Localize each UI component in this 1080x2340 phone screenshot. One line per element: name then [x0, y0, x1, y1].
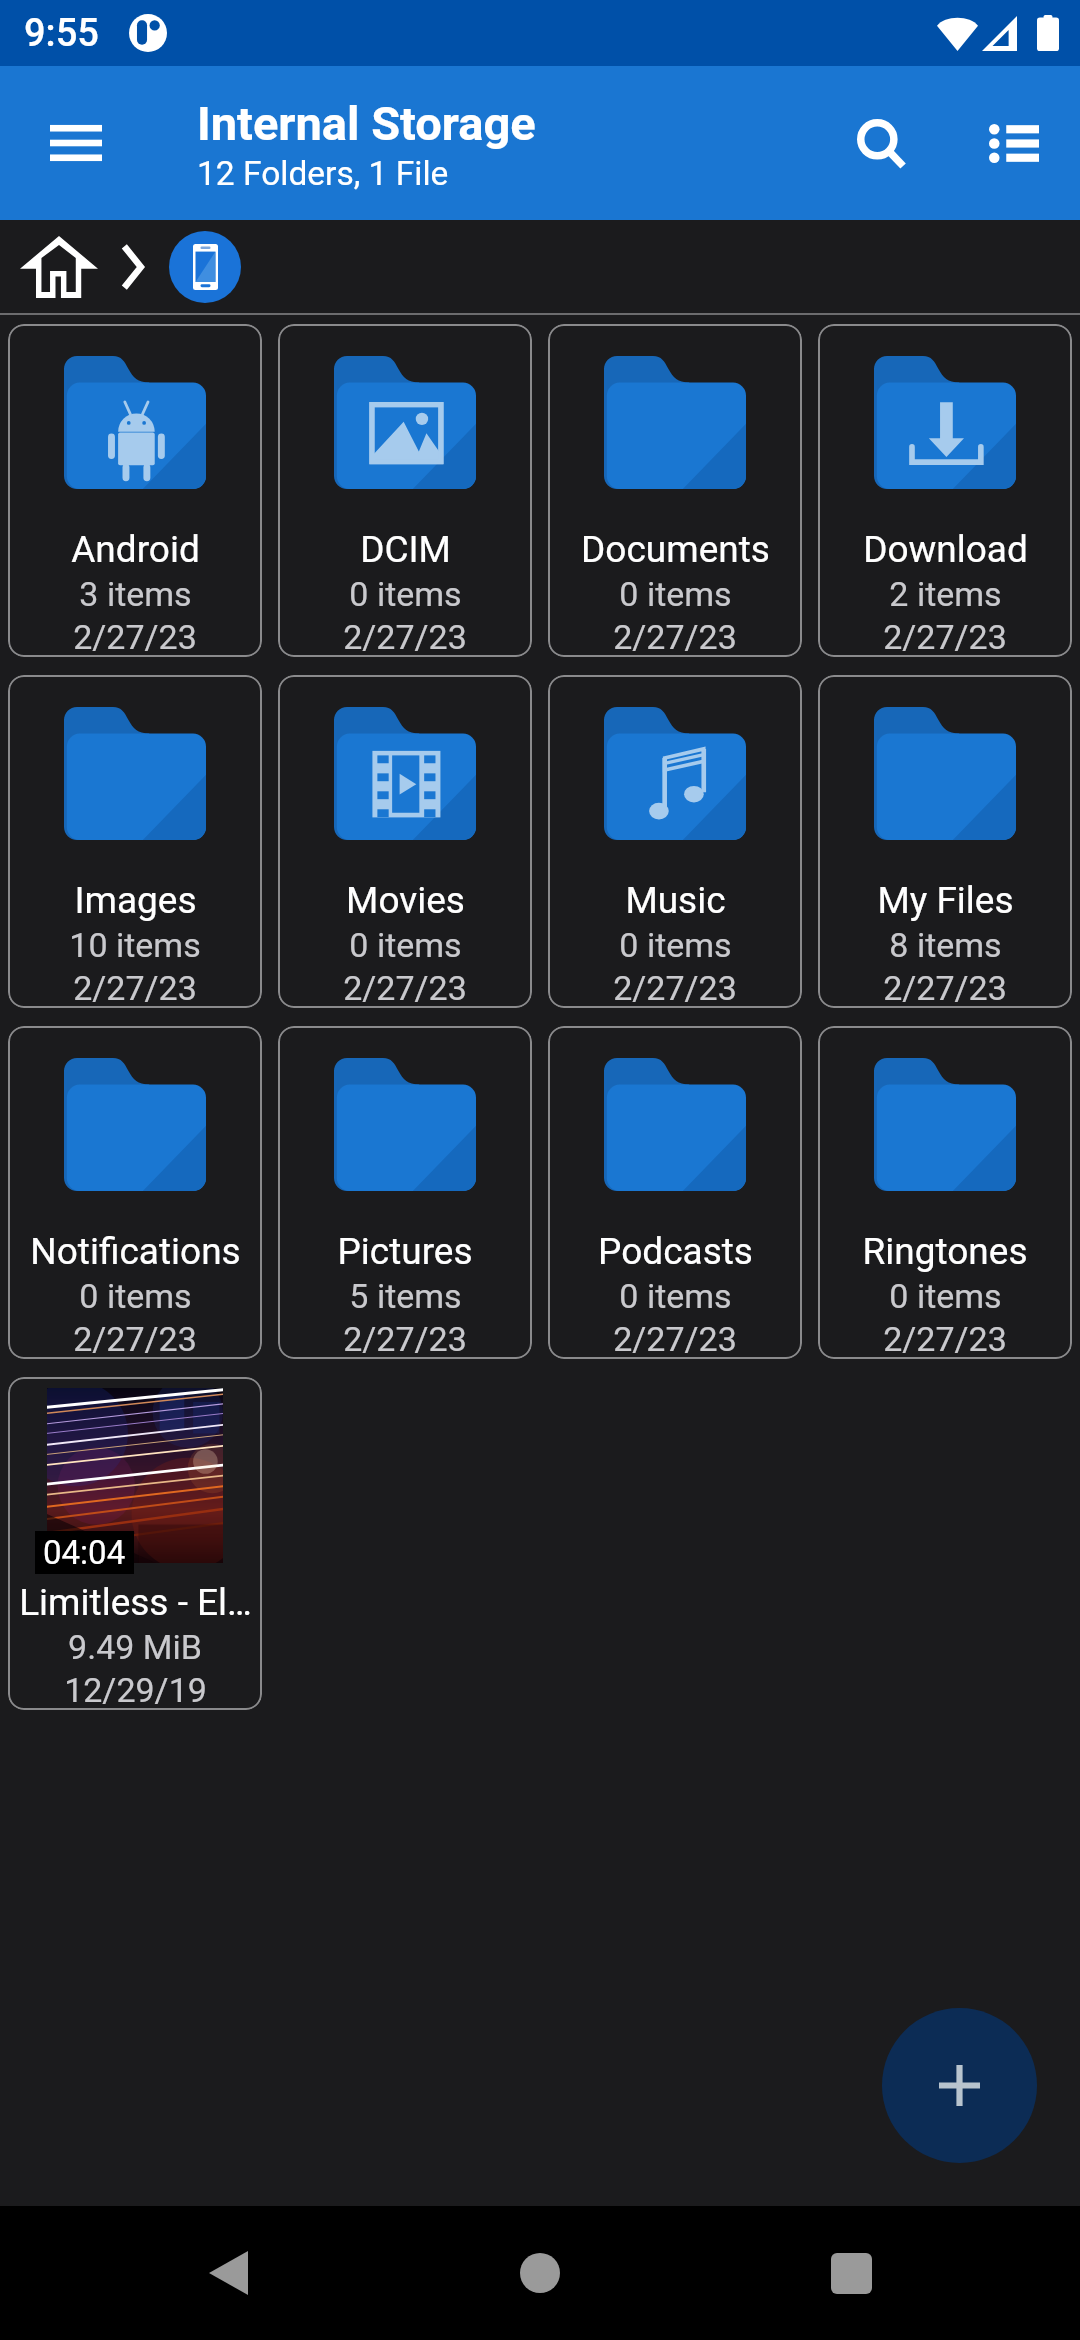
- staticText: Notifications: [30, 1230, 241, 1273]
- button[interactable]: Ringtones: [818, 1026, 1072, 1359]
- staticText: 5 items: [349, 1276, 462, 1316]
- staticText: 8 items: [889, 925, 1002, 965]
- staticText: 2/27/23: [613, 1319, 737, 1359]
- staticText: 12/29/19: [64, 1670, 207, 1710]
- button[interactable]: Change view: [965, 66, 1063, 220]
- staticText: 0 items: [889, 1276, 1002, 1316]
- button[interactable]: Documents: [548, 324, 802, 657]
- staticText: 2/27/23: [613, 968, 737, 1008]
- staticText: Images: [74, 879, 197, 922]
- staticText: 0 items: [349, 925, 462, 965]
- staticText: 0 items: [349, 574, 462, 614]
- button[interactable]: Music: [548, 675, 802, 1008]
- staticText: 9.49 MiB: [68, 1627, 202, 1667]
- staticText: 2/27/23: [73, 1319, 197, 1359]
- button[interactable]: 04:04: [8, 1377, 262, 1710]
- staticText: DCIM: [360, 528, 451, 571]
- staticText: 0 items: [619, 1276, 732, 1316]
- staticText: 0 items: [619, 925, 732, 965]
- staticText: 10 items: [69, 925, 201, 965]
- button[interactable]: Home: [10, 220, 108, 313]
- button[interactable]: Back: [148, 2206, 308, 2340]
- staticText: 0 items: [619, 574, 732, 614]
- button[interactable]: Open navigation drawer: [28, 95, 124, 191]
- staticText: My Files: [877, 879, 1014, 922]
- staticText: 2/27/23: [73, 968, 197, 1008]
- staticText: 0 items: [79, 1276, 192, 1316]
- staticText: 2 items: [889, 574, 1002, 614]
- staticText: 2/27/23: [883, 968, 1007, 1008]
- staticText: Movies: [346, 879, 465, 922]
- staticText: Documents: [581, 528, 770, 571]
- button[interactable]: Search: [832, 66, 930, 220]
- staticText: 04:04: [43, 1533, 126, 1572]
- button[interactable]: Internal Storage: [169, 231, 241, 303]
- staticText: Music: [625, 879, 726, 922]
- staticText: 2/27/23: [613, 617, 737, 657]
- button[interactable]: Home: [460, 2206, 620, 2340]
- staticText: 2/27/23: [343, 617, 467, 657]
- staticText: 2/27/23: [343, 968, 467, 1008]
- staticText: 2/27/23: [343, 1319, 467, 1359]
- staticText: Limitless - El…: [19, 1581, 252, 1624]
- staticText: Android: [71, 528, 200, 571]
- button[interactable]: Add: [882, 2008, 1037, 2163]
- staticText: Pictures: [337, 1230, 473, 1273]
- button[interactable]: Pictures: [278, 1026, 532, 1359]
- button[interactable]: Android: [8, 324, 262, 657]
- staticText: Ringtones: [862, 1230, 1028, 1273]
- button[interactable]: Images: [8, 675, 262, 1008]
- staticText: 12 Folders, 1 File: [197, 154, 449, 193]
- staticText: Internal Storage: [197, 96, 536, 151]
- button[interactable]: My Files: [818, 675, 1072, 1008]
- staticText: 2/27/23: [73, 617, 197, 657]
- button[interactable]: Movies: [278, 675, 532, 1008]
- button[interactable]: Podcasts: [548, 1026, 802, 1359]
- staticText: Podcasts: [598, 1230, 753, 1273]
- staticText: 2/27/23: [883, 1319, 1007, 1359]
- button[interactable]: DCIM: [278, 324, 532, 657]
- button[interactable]: Recent apps: [771, 2206, 931, 2340]
- staticText: 9:55: [24, 11, 99, 56]
- staticText: 2/27/23: [883, 617, 1007, 657]
- staticText: 3 items: [79, 574, 192, 614]
- button[interactable]: Download: [818, 324, 1072, 657]
- button[interactable]: Notifications: [8, 1026, 262, 1359]
- staticText: Download: [863, 528, 1028, 571]
